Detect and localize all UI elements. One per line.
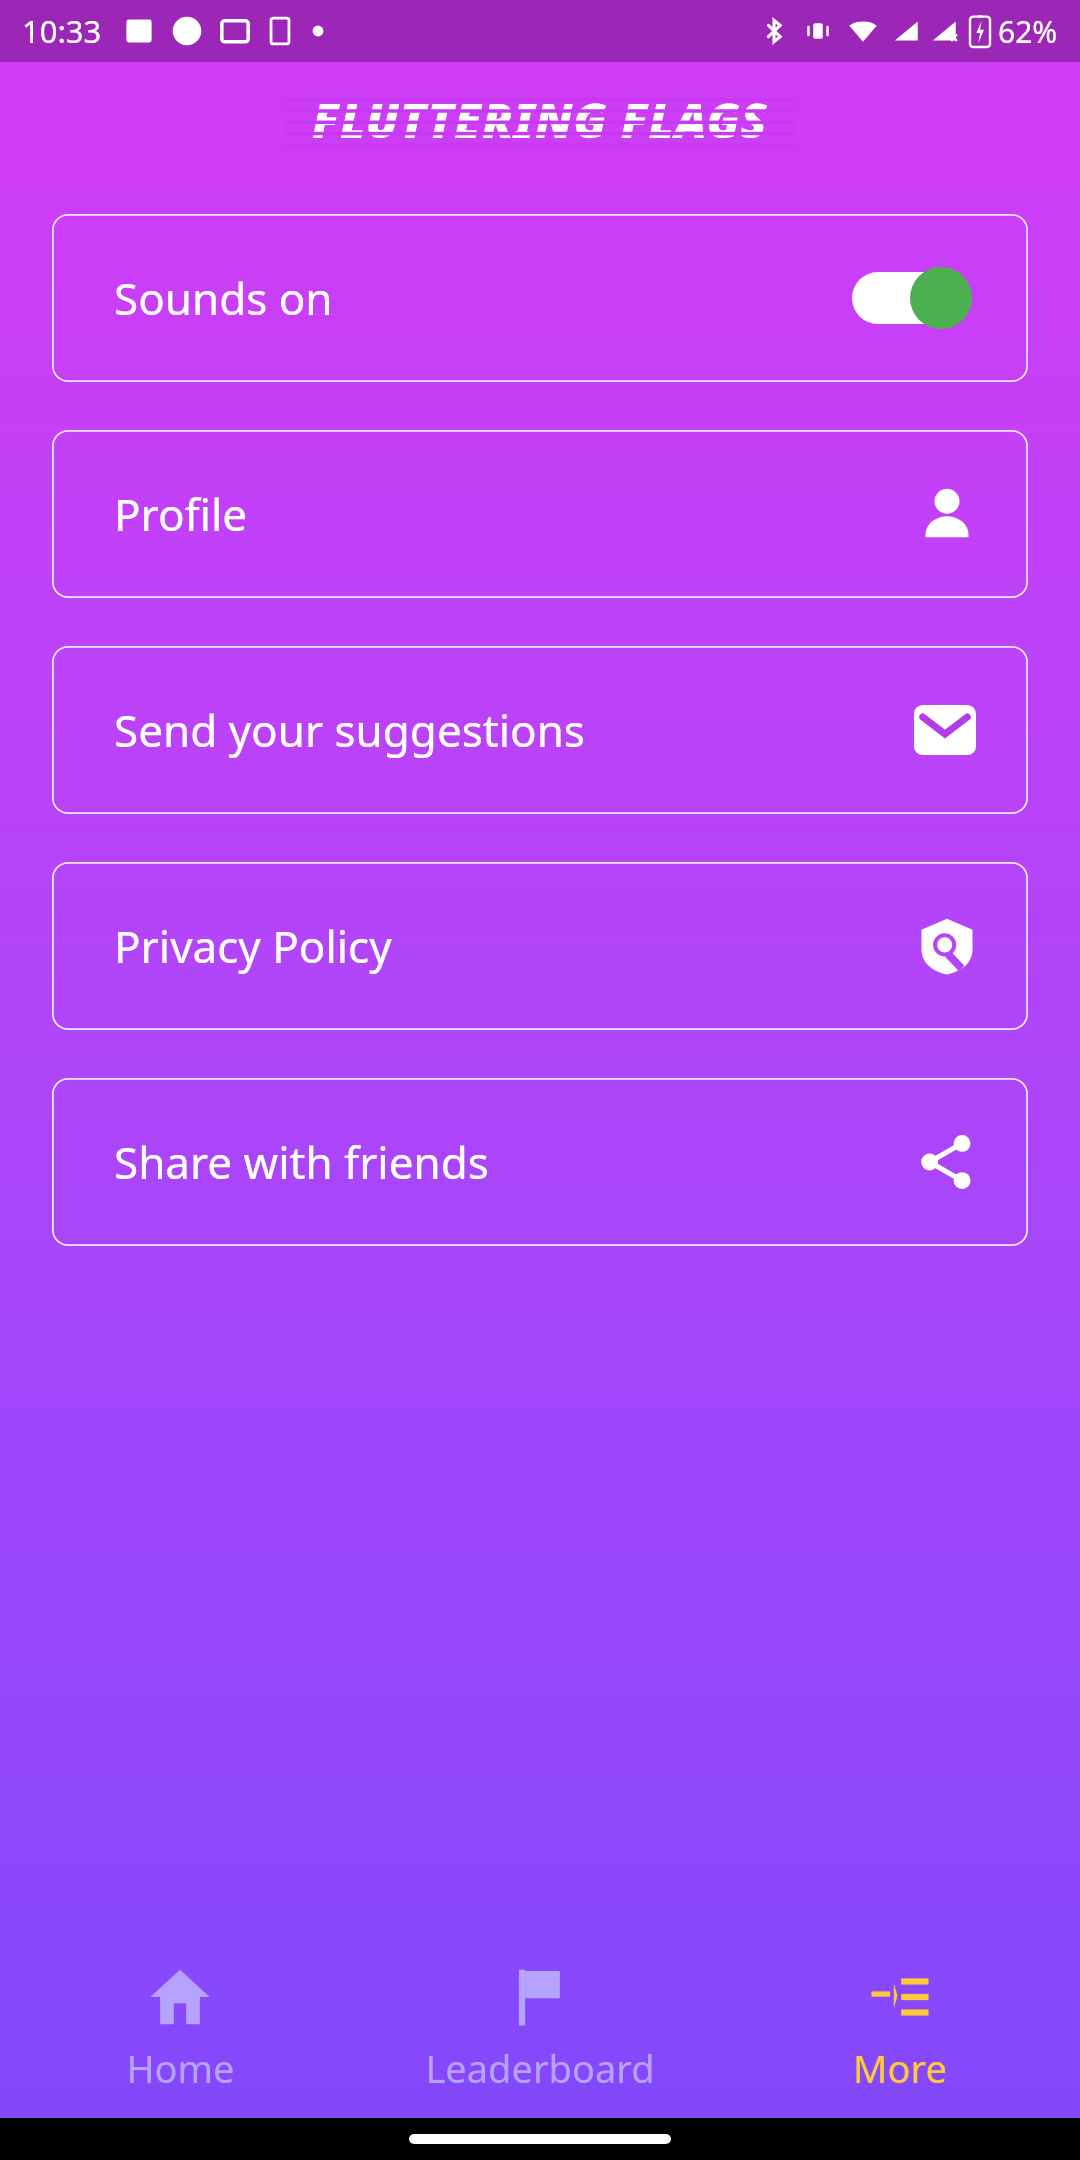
button[interactable]: Leaderboard	[360, 1940, 720, 2118]
button[interactable]: Sounds on	[52, 214, 1028, 382]
button[interactable]: Send your suggestions	[52, 646, 1028, 814]
button[interactable]: Profile	[52, 430, 1028, 598]
staticText: Leaderboard	[425, 2042, 655, 2094]
button[interactable]: Share with friends	[52, 1078, 1028, 1246]
staticText: Send your suggestions	[114, 700, 585, 760]
staticText: Share with friends	[114, 1132, 489, 1192]
staticText: FLUTTERING FLAGS	[312, 88, 768, 150]
staticText: 62%	[998, 11, 1058, 52]
staticText: More	[853, 2042, 947, 2094]
button[interactable]: Privacy Policy	[918, 917, 976, 975]
staticText: Sounds on	[114, 268, 333, 328]
staticText: 10:33	[22, 10, 102, 52]
button[interactable]: Sounds toggle	[852, 267, 976, 329]
button[interactable]: Home	[0, 1940, 360, 2118]
button[interactable]: More	[720, 1940, 1080, 2118]
button[interactable]: Privacy Policy	[52, 862, 1028, 1030]
button[interactable]: Profile	[918, 485, 976, 543]
staticText: Profile	[114, 484, 248, 544]
staticText: Home	[126, 2042, 235, 2094]
button[interactable]: Send your suggestions	[914, 705, 976, 755]
staticText: Privacy Policy	[114, 916, 392, 976]
button[interactable]: Share with friends	[918, 1133, 976, 1191]
